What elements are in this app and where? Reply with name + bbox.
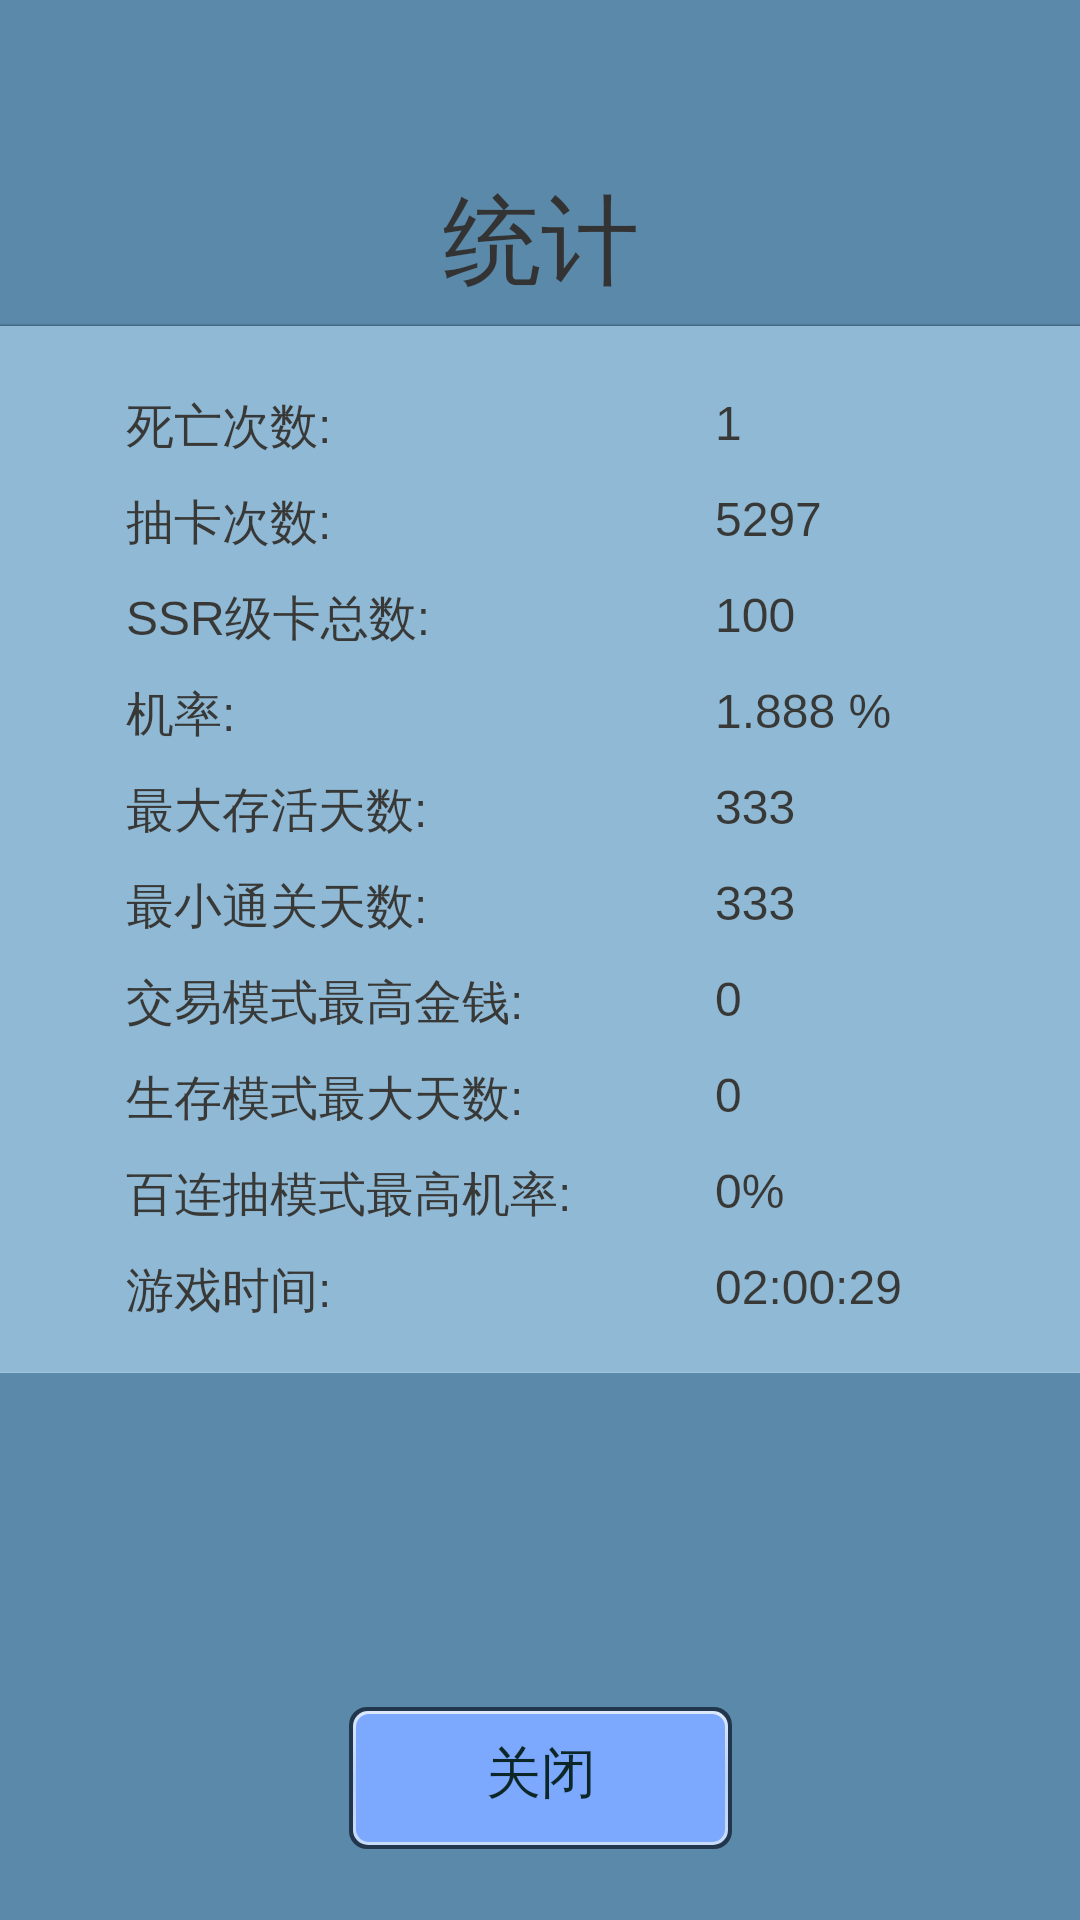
staticText: 机率:: [126, 685, 236, 745]
staticText: 02:00:29: [715, 1261, 902, 1315]
staticText: 游戏时间:: [126, 1261, 332, 1321]
staticText: 0%: [715, 1165, 785, 1219]
staticText: 最小通关天数:: [126, 877, 428, 937]
staticText: 生存模式最大天数:: [126, 1069, 524, 1129]
staticText: 抽卡次数:: [126, 493, 332, 553]
staticText: 交易模式最高金钱:: [126, 973, 524, 1033]
staticText: 关闭: [486, 1739, 596, 1808]
staticText: 100: [715, 589, 796, 643]
staticText: 0: [715, 1069, 742, 1123]
staticText: 1.888 %: [715, 685, 892, 739]
staticText: 0: [715, 973, 742, 1027]
staticText: 最大存活天数:: [126, 781, 428, 841]
staticText: 统计: [443, 181, 639, 304]
staticText: 百连抽模式最高机率:: [126, 1165, 572, 1225]
staticText: 333: [715, 781, 796, 835]
button[interactable]: 关闭 Close: [356, 1714, 725, 1842]
staticText: 死亡次数:: [126, 397, 332, 457]
staticText: 333: [715, 877, 796, 931]
staticText: 5297: [715, 493, 822, 547]
staticText: 1: [715, 397, 742, 451]
staticText: SSR级卡总数:: [126, 589, 431, 649]
